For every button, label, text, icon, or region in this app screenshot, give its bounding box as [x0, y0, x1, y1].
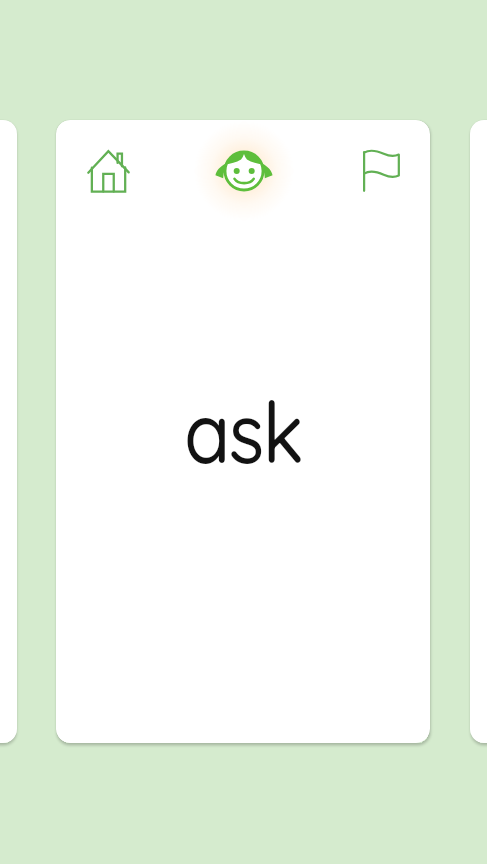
button[interactable]: Home	[56, 120, 430, 743]
button[interactable]: Profile	[194, 121, 294, 221]
button[interactable]: Home	[82, 145, 134, 197]
staticText: ask	[75, 379, 411, 484]
button[interactable]: Report	[355, 145, 407, 197]
